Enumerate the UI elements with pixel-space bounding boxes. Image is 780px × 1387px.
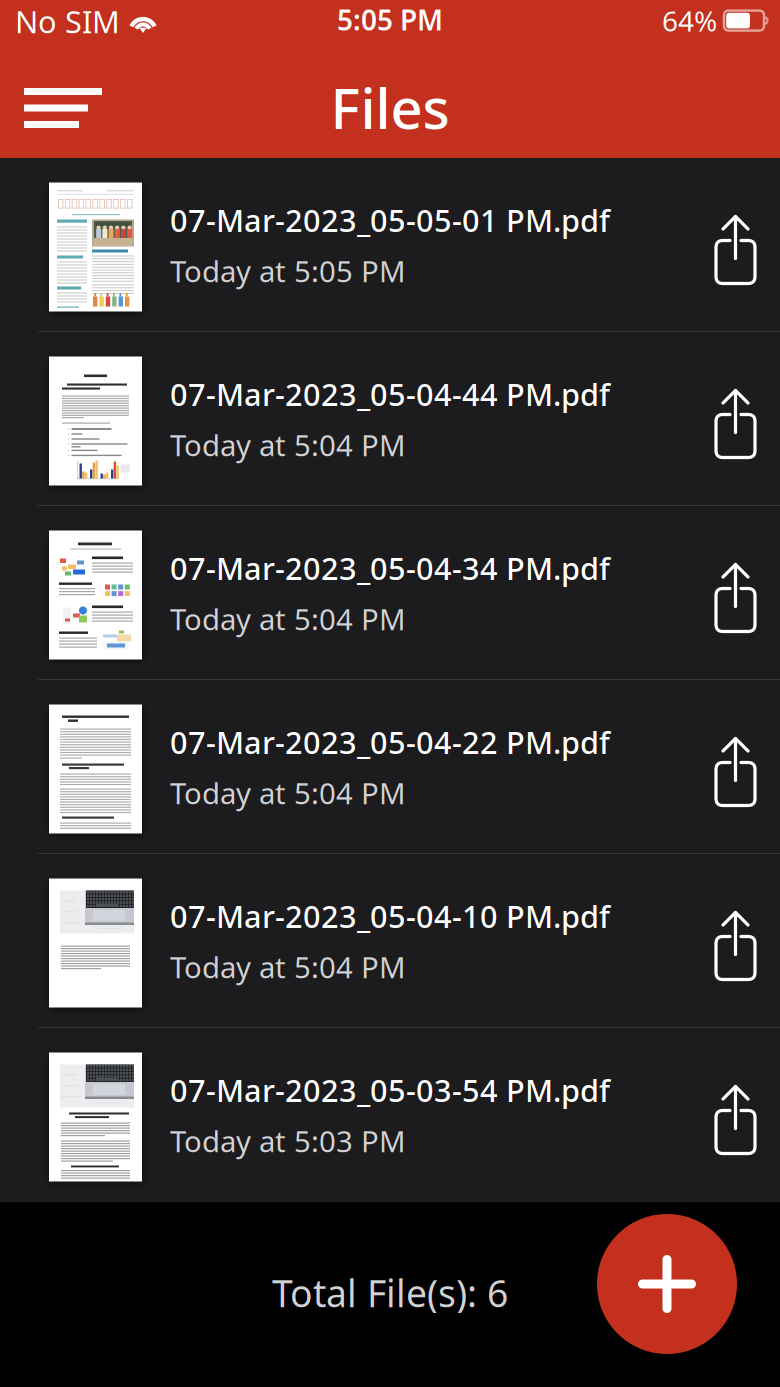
button[interactable]: Add file: [597, 1214, 737, 1354]
button[interactable]: 07-Mar-2023_05-04-34 PM.pdf: [0, 507, 780, 679]
button[interactable]: 07-Mar-2023_05-04-44 PM.pdf: [0, 333, 780, 505]
staticText: 5:05 PM: [337, 1, 443, 38]
button[interactable]: 07-Mar-2023_05-03-54 PM.pdf: [0, 1029, 780, 1201]
button[interactable]: Menu: [0, 72, 130, 144]
staticText: Today at 5:04 PM: [170, 599, 406, 638]
staticText: Today at 5:03 PM: [170, 1121, 406, 1160]
staticText: 07-Mar-2023_05-04-10 PM.pdf: [170, 896, 610, 936]
button[interactable]: 07-Mar-2023_05-04-22 PM.pdf: [0, 681, 780, 853]
staticText: 07-Mar-2023_05-04-34 PM.pdf: [170, 548, 610, 588]
staticText: 07-Mar-2023_05-04-22 PM.pdf: [170, 722, 610, 762]
staticText: Today at 5:04 PM: [170, 425, 406, 464]
staticText: 07-Mar-2023_05-05-01 PM.pdf: [170, 200, 610, 240]
button[interactable]: 07-Mar-2023_05-05-01 PM.pdf: [0, 159, 780, 331]
staticText: 64%: [662, 2, 717, 39]
staticText: 07-Mar-2023_05-03-54 PM.pdf: [170, 1070, 610, 1110]
staticText: Today at 5:04 PM: [170, 773, 406, 812]
staticText: Total File(s): 6: [272, 1268, 508, 1318]
staticText: 07-Mar-2023_05-04-44 PM.pdf: [170, 374, 610, 414]
staticText: Today at 5:04 PM: [170, 947, 406, 986]
staticText: Files: [330, 70, 449, 144]
staticText: Today at 5:05 PM: [170, 251, 406, 290]
button[interactable]: 07-Mar-2023_05-04-10 PM.pdf: [0, 855, 780, 1027]
staticText: No SIM: [15, 1, 120, 42]
